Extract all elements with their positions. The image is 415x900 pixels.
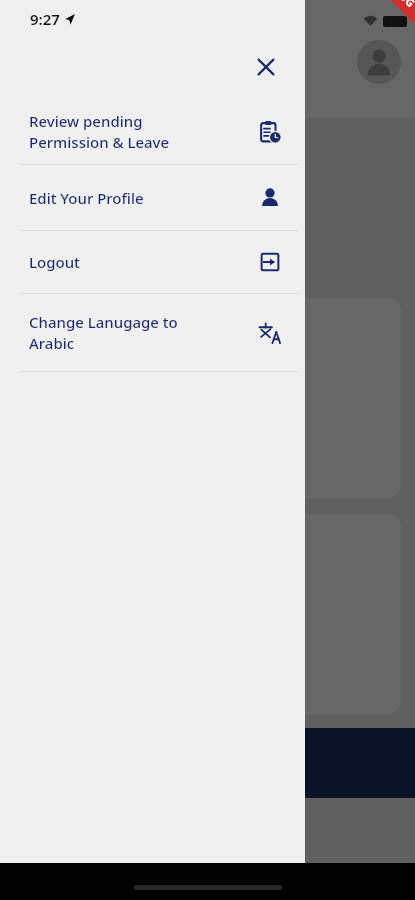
staticText: DEBUG [381, 0, 415, 10]
button[interactable]: Change Lanugage to Arabic [0, 294, 305, 371]
staticText: Change Lanugage to Arabic [29, 312, 178, 354]
staticText: Logout [29, 252, 80, 272]
staticText: Late [42, 244, 71, 263]
staticText: Present [42, 130, 93, 149]
staticText: Edit Your Profile [29, 188, 144, 208]
button[interactable]: Review pending Permission & Leave [0, 100, 305, 164]
button[interactable]: Logout [0, 231, 305, 293]
button[interactable]: Close menu [249, 50, 283, 84]
button[interactable]: Edit Your Profile [0, 165, 305, 230]
staticText: 9:27 [30, 9, 60, 29]
staticText: Review pending Permission & Leave [29, 111, 170, 153]
